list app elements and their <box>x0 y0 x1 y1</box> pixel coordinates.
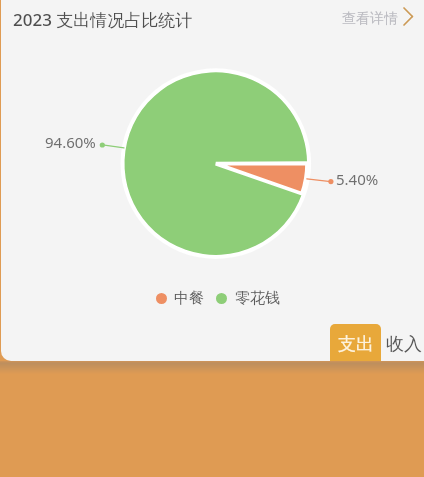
button[interactable]: 支出 <box>330 324 381 361</box>
staticText: 2023 支出情况占比统计 <box>13 8 193 31</box>
other: 查看详情 <box>399 9 413 29</box>
staticText: 收入 <box>386 333 422 356</box>
button[interactable]: 收入 <box>386 326 424 361</box>
staticText: 支出 <box>338 333 374 356</box>
button[interactable]: 查看详情 <box>342 9 417 29</box>
staticText: 94.60% <box>45 132 96 152</box>
staticText: 查看详情 <box>342 10 398 28</box>
staticText: 中餐 <box>174 289 204 308</box>
staticText: 零花钱 <box>235 289 280 308</box>
staticText: 5.40% <box>336 169 379 189</box>
